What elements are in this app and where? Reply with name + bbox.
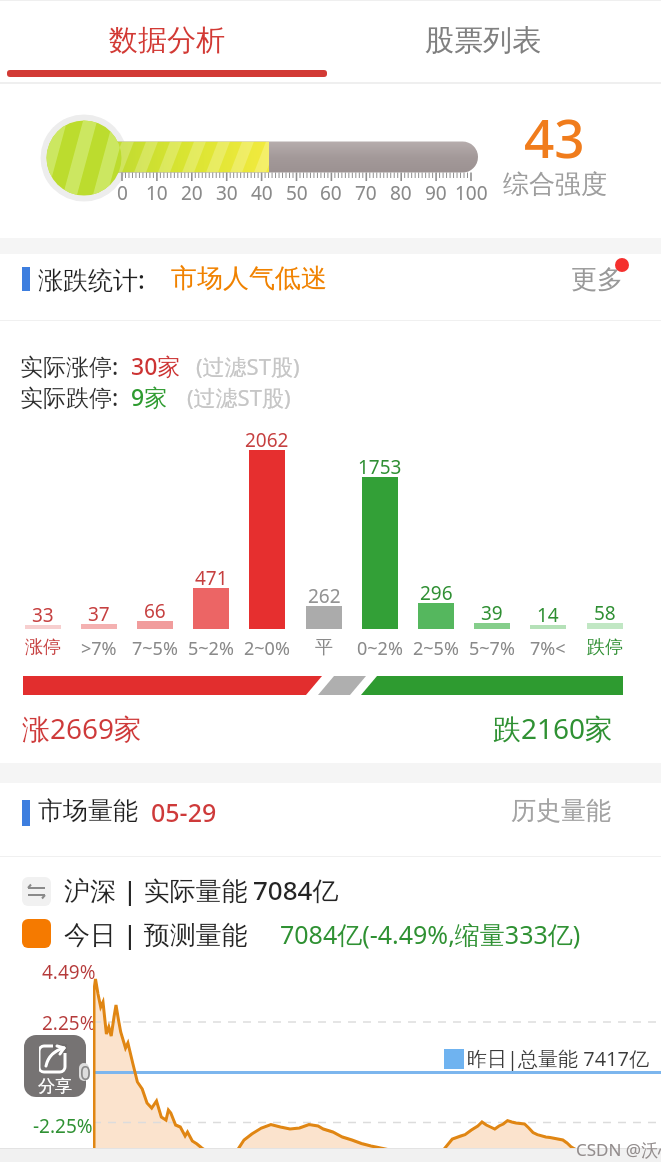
staticText: 涨2669家	[22, 709, 143, 747]
staticText: 296	[420, 580, 453, 606]
staticText: 涨跌统计:	[38, 262, 145, 296]
staticText: 39	[481, 600, 503, 626]
staticText: 7084亿(-4.49%,缩量333亿)	[280, 917, 581, 951]
staticText: >7%	[81, 636, 117, 661]
staticText: 30家	[131, 350, 181, 381]
button[interactable]: 分享	[24, 1035, 86, 1097]
staticText: 9家	[131, 381, 168, 412]
staticText: 2062	[245, 427, 289, 453]
staticText: 历史量能	[511, 795, 611, 826]
staticText: 100	[455, 180, 488, 206]
staticText: 43	[524, 101, 585, 173]
staticText: 跌停	[587, 636, 623, 659]
staticText: 66	[144, 598, 166, 624]
staticText: 4.49%	[42, 959, 96, 985]
staticText: 实际跌停:	[20, 381, 119, 412]
staticText: 7084亿	[253, 872, 339, 908]
staticText: 沪深 | 实际量能	[64, 872, 248, 908]
button[interactable]	[0, 0, 330, 82]
staticText: 市场量能	[38, 795, 138, 826]
staticText: (过滤ST股)	[187, 382, 291, 412]
staticText: 跌2160家	[493, 709, 614, 747]
staticText: 市场人气低迷	[171, 262, 327, 295]
staticText: 1753	[358, 454, 402, 480]
staticText: 2.25%	[42, 1010, 96, 1036]
button[interactable]	[545, 250, 655, 295]
staticText: 50	[286, 180, 308, 206]
staticText: -2.25%	[33, 1113, 93, 1139]
staticText: 40	[251, 180, 273, 206]
staticText: 471	[195, 565, 228, 591]
staticText: 综合强度	[503, 168, 607, 201]
staticText: 实际涨停:	[20, 350, 119, 381]
staticText: 0~2%	[357, 636, 403, 661]
button[interactable]	[330, 0, 661, 82]
staticText: 7~5%	[132, 636, 178, 661]
staticText: (过滤ST股)	[196, 351, 300, 381]
staticText: 05-29	[151, 795, 217, 829]
staticText: 数据分析	[109, 22, 225, 59]
staticText: CSDN @沃心	[576, 1138, 661, 1161]
button[interactable]	[490, 790, 661, 835]
staticText: 今日 | 预测量能	[64, 916, 248, 952]
staticText: 70	[355, 180, 377, 206]
staticText: 2~5%	[413, 636, 459, 661]
staticText: 涨停	[25, 636, 61, 659]
staticText: 0	[80, 1060, 91, 1086]
staticText: 20	[181, 180, 203, 206]
staticText: 14	[537, 602, 559, 628]
staticText: 37	[88, 601, 110, 627]
staticText: 58	[594, 600, 616, 626]
staticText: 0	[117, 180, 128, 206]
staticText: 90	[425, 180, 447, 206]
staticText: 30	[216, 180, 238, 206]
staticText: 昨日|总量能 7417亿	[467, 1045, 649, 1072]
staticText: 更多	[571, 263, 623, 296]
staticText: 股票列表	[425, 22, 541, 59]
staticText: 7%<	[530, 636, 566, 661]
staticText: 5~2%	[188, 636, 234, 661]
staticText: 80	[390, 180, 412, 206]
staticText: 262	[308, 583, 341, 609]
staticText: 5~7%	[469, 636, 515, 661]
staticText: 2~0%	[244, 636, 290, 661]
staticText: 平	[315, 636, 333, 659]
staticText: 分享	[38, 1076, 72, 1097]
staticText: 33	[32, 602, 54, 628]
staticText: 60	[320, 180, 342, 206]
staticText: 10	[146, 180, 168, 206]
